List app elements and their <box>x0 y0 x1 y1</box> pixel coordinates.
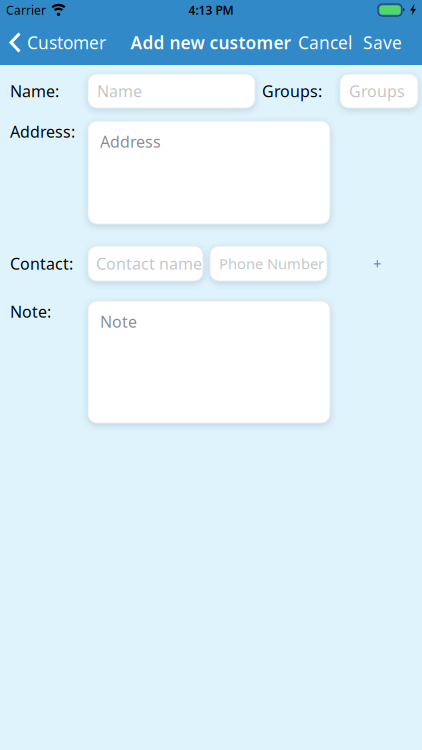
staticText: Add new customer <box>130 31 291 54</box>
button[interactable]: Address <box>88 121 330 224</box>
button[interactable]: Save <box>352 31 422 54</box>
button[interactable]: Cancel <box>298 31 352 54</box>
staticText: Groups <box>349 80 405 102</box>
staticText: + <box>373 254 381 273</box>
button[interactable]: Note <box>88 301 330 423</box>
staticText: Address: <box>10 121 75 142</box>
button[interactable]: Contact name <box>88 246 203 281</box>
staticText: Name <box>97 80 142 102</box>
button[interactable]: Groups <box>340 74 418 108</box>
button[interactable]: Name <box>88 74 255 108</box>
staticText: Note: <box>10 301 51 322</box>
staticText: Groups: <box>262 80 322 102</box>
button[interactable]: Customer <box>0 31 106 54</box>
staticText: Contact name <box>96 253 202 274</box>
staticText: 4:13 PM <box>188 2 233 18</box>
staticText: Address <box>100 131 161 152</box>
staticText: Phone Number <box>219 254 324 273</box>
staticText: Carrier <box>6 2 46 18</box>
staticText: Customer <box>27 31 106 54</box>
staticText: Contact: <box>10 253 73 274</box>
staticText: Name: <box>10 80 59 102</box>
button[interactable]: Add contact <box>362 248 392 278</box>
staticText: Save <box>363 31 402 54</box>
staticText: Note <box>100 311 137 332</box>
button[interactable]: Phone Number <box>210 246 327 281</box>
staticText: Cancel <box>298 31 352 54</box>
